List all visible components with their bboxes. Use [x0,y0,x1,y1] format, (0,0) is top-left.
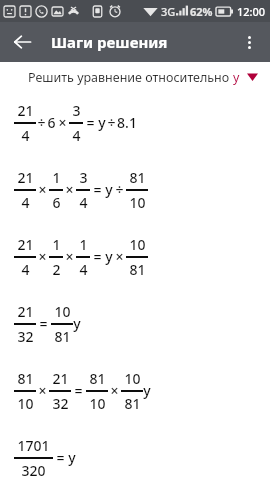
staticText: 21 [17,302,34,321]
staticText: y [143,381,151,400]
staticText: 62% [190,4,213,19]
staticText: y [233,69,240,86]
button[interactable]: 81 [14,368,270,413]
staticText: 32 [52,394,69,413]
staticText: y [105,180,113,199]
staticText: × [65,180,74,199]
button[interactable]: 21 [14,100,270,145]
staticText: 4 [79,260,88,279]
staticText: 81 [129,168,146,187]
staticText: 81 [17,369,34,388]
staticText: × [38,381,47,400]
staticText: = [74,381,83,400]
staticText: 10 [129,193,146,212]
staticText: 21 [17,235,34,254]
staticText: 3 [72,101,81,120]
staticText: y [68,448,76,467]
staticText: 6 [52,193,61,212]
staticText: 10 [54,302,71,321]
staticText: 10 [124,369,141,388]
staticText: 4 [21,260,30,279]
staticText: ÷ [107,113,116,132]
staticText: ÷ [37,113,46,132]
staticText: 4 [79,193,88,212]
button[interactable]: More options [230,23,268,61]
staticText: 4 [21,193,30,212]
button[interactable]: 1701 [14,435,270,480]
staticText: y [98,113,106,132]
button[interactable]: 21 [14,234,270,279]
staticText: = [56,448,65,467]
button[interactable]: 21 [14,301,270,346]
staticText: 21 [17,101,34,120]
staticText: = [39,314,48,333]
staticText: 3G [161,4,176,19]
button[interactable]: Back [3,23,41,61]
button[interactable]: Решить уравнение относительно [0,62,270,92]
staticText: × [38,247,47,266]
staticText: 2 [52,260,61,279]
staticText: Решить уравнение относительно [28,69,233,86]
staticText: 1 [79,235,88,254]
staticText: × [38,180,47,199]
staticText: × [115,247,124,266]
staticText: = [86,113,95,132]
staticText: y [73,314,81,333]
staticText: × [58,113,67,132]
staticText: 1 [52,168,61,187]
staticText: 21 [52,369,69,388]
staticText: 1701 [17,436,50,455]
staticText: 4 [21,126,30,145]
staticText: 1 [52,235,61,254]
staticText: 320 [21,461,46,480]
staticText: 81 [54,327,71,346]
staticText: = [93,180,102,199]
staticText: 10 [129,235,146,254]
staticText: 10 [17,394,34,413]
staticText: ÷ [115,180,124,199]
staticText: × [65,247,74,266]
staticText: 81 [89,369,106,388]
staticText: 4 [72,126,81,145]
staticText: Шаги решения [51,32,168,52]
button[interactable]: 21 [14,167,270,212]
staticText: 81 [124,394,141,413]
staticText: 6 [47,113,56,132]
staticText: 32 [17,327,34,346]
staticText: × [110,381,119,400]
staticText: 12:00 [237,4,266,19]
staticText: 21 [17,168,34,187]
staticText: 10 [89,394,106,413]
staticText: = [93,247,102,266]
staticText: 8.1 [117,113,137,132]
staticText: y [105,247,113,266]
staticText: 81 [129,260,146,279]
staticText: 3 [79,168,88,187]
